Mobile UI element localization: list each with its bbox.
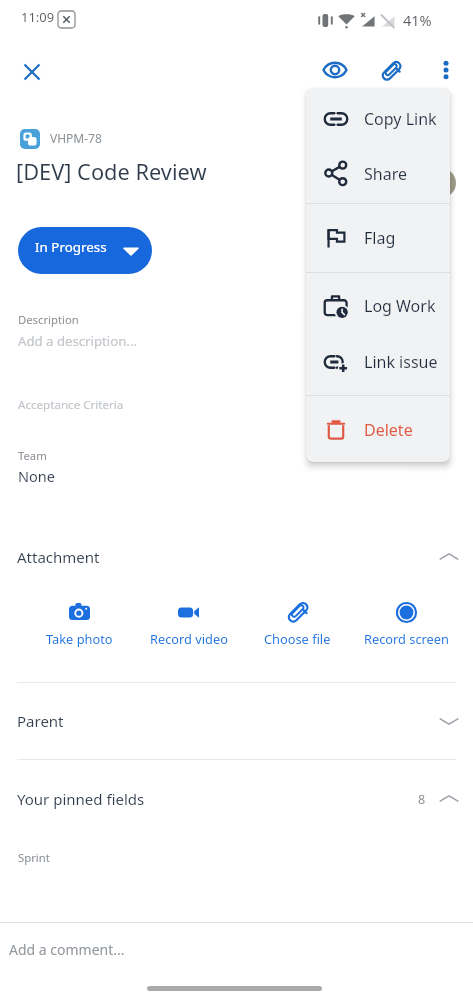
- staticText: Sprint: [18, 850, 50, 865]
- button[interactable]: Close: [10, 50, 54, 94]
- button[interactable]: Take photo: [24, 600, 134, 649]
- staticText: Add a description...: [18, 332, 137, 350]
- staticText: Record screen: [364, 630, 449, 647]
- staticText: Flag: [364, 227, 396, 249]
- staticText: 8: [418, 791, 426, 808]
- staticText: Choose file: [264, 630, 331, 647]
- staticText: Copy Link: [364, 108, 437, 130]
- button[interactable]: Your pinned fields: [0, 760, 473, 838]
- button[interactable]: Attach: [368, 48, 412, 92]
- staticText: 41%: [403, 10, 432, 30]
- staticText: Delete: [364, 419, 413, 441]
- staticText: Record video: [150, 630, 228, 647]
- button[interactable]: Attachment: [0, 536, 473, 578]
- staticText: Team: [18, 448, 47, 463]
- button[interactable]: In Progress: [18, 227, 152, 274]
- staticText: 11:09: [21, 8, 55, 26]
- button[interactable]: Share: [306, 146, 450, 201]
- staticText: Log Work: [364, 295, 436, 317]
- button[interactable]: Parent: [0, 683, 473, 759]
- button[interactable]: More options: [425, 49, 466, 90]
- button[interactable]: Log Work: [306, 278, 450, 334]
- staticText: Add a comment...: [9, 940, 125, 959]
- staticText: Link issue: [364, 351, 438, 373]
- staticText: None: [18, 466, 55, 486]
- staticText: Acceptance Criteria: [18, 397, 124, 413]
- staticText: Parent: [17, 711, 64, 731]
- button[interactable]: Copy Link: [306, 91, 450, 146]
- staticText: Share: [364, 163, 407, 185]
- staticText: In Progress: [35, 238, 107, 256]
- button[interactable]: Add a comment...: [0, 923, 473, 975]
- button[interactable]: Choose file: [243, 600, 352, 649]
- staticText: VHPM-78: [50, 130, 102, 146]
- staticText: Your pinned fields: [17, 789, 145, 809]
- button[interactable]: Watch: [313, 48, 357, 92]
- staticText: Attachment: [17, 547, 100, 567]
- staticText: Take photo: [46, 630, 113, 647]
- button[interactable]: Flag: [306, 214, 450, 262]
- button[interactable]: Record video: [134, 600, 243, 649]
- staticText: [DEV] Code Review: [16, 157, 207, 187]
- button[interactable]: Link issue: [306, 334, 450, 390]
- button[interactable]: Delete: [306, 406, 450, 454]
- staticText: Description: [18, 312, 79, 327]
- button[interactable]: Record screen: [352, 600, 461, 649]
